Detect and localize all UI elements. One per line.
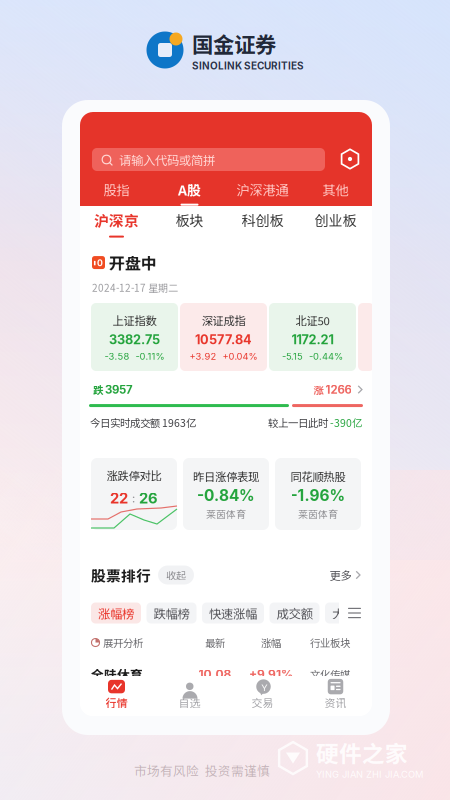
button[interactable]: 涨幅榜 [91,602,141,623]
button[interactable]: 扫一扫 [339,148,361,170]
staticText: SINOLINK SECURITIES [192,60,304,72]
button[interactable]: 昨日涨停表现 [183,458,269,530]
button[interactable]: 行情 [80,676,153,716]
staticText: 自选 [178,695,200,710]
staticText: 沪深京 [94,209,139,231]
staticText: 1172.21 [291,332,333,347]
button[interactable]: 同花顺热股 [275,458,361,530]
staticText: 行业板块 [310,635,350,650]
staticText: 文化传媒 [310,667,350,682]
button[interactable]: 北证50 [269,303,356,371]
staticText: 股指 [103,180,129,199]
staticText: : [132,491,135,505]
staticText: 市场有风险 投资需谨慎 [134,761,270,779]
button[interactable]: 更多 [329,567,361,583]
staticText: 10577.84 [195,332,252,347]
staticText: 涨 [313,382,325,397]
staticText: -1.96% [290,486,345,505]
staticText: 深证成指 [201,312,245,328]
staticText: 涨幅榜 [98,604,134,622]
staticText: 大单 [332,604,356,622]
button[interactable]: 沪深京 [80,207,153,240]
staticText: 北证50 [295,312,329,328]
staticText: 行情 [105,695,127,710]
staticText: 全陆休育 [91,665,143,683]
staticText: A股 [178,179,201,200]
staticText: 国金证券 [192,28,276,59]
staticText: -5.15 -0.44% [282,351,343,362]
button[interactable]: 自选 [153,676,226,716]
button[interactable]: 更多榜单 [347,605,362,620]
staticText: 更多 [329,567,351,583]
staticText: +3.92 +0.04% [189,351,257,362]
staticText: 较上一日此时 [268,415,330,430]
staticText: -3.58 -0.11% [104,351,164,362]
staticText: 3382.75 [109,332,160,347]
button[interactable]: 大单 [325,602,363,623]
button[interactable]: 快速涨幅 [202,602,264,623]
staticText: 1266 [325,383,351,396]
button[interactable]: 资讯 [299,676,372,716]
staticText: Y [261,682,267,694]
button[interactable]: 科创板 [226,207,299,240]
button[interactable]: 板块 [153,207,226,240]
staticText: 成交额 [276,604,312,622]
staticText: 开盘中 [109,251,157,274]
staticText: 交易 [251,695,273,710]
staticText: +9.91% [249,667,293,681]
staticText: 22 [110,489,128,507]
staticText: 板块 [175,210,203,230]
button[interactable]: 上证指数 [91,303,178,371]
staticText: 3957 [105,383,133,396]
staticText: 最新 [205,635,225,650]
staticText: 0 [97,258,103,268]
staticText: 其他 [322,180,348,199]
staticText: 莱茵体育 [206,506,246,521]
staticText: 创业板 [314,210,356,230]
staticText: 股票排行 [91,564,151,586]
staticText: 涨跌停对比 [106,467,161,483]
staticText: 展开分析 [103,635,143,650]
button[interactable]: 深证成指 [180,303,267,371]
staticText: 10.08 [198,667,231,681]
button[interactable]: Y [226,676,299,716]
button[interactable]: 跌幅榜 [146,602,196,623]
staticText: 2024-12-17 星期二 [92,280,178,295]
staticText: 请输入代码或简拼 [119,150,215,168]
staticText: 跌幅榜 [153,604,189,622]
button[interactable]: 沪深港通 [226,180,299,205]
button[interactable]: A股 [153,180,226,205]
button[interactable]: 其他 [299,180,372,205]
staticText: 莱茵体育 [298,506,338,521]
staticText: 26 [139,489,158,507]
staticText: 硬件之家 [316,736,408,769]
staticText: 昨日涨停表现 [193,468,259,484]
staticText: 跌 [93,382,105,397]
button[interactable]: 股指 [80,180,153,205]
staticText: 沪深港通 [236,180,288,199]
staticText: 资讯 [324,695,346,710]
staticText: -0.84% [197,486,255,505]
button[interactable]: 创业板 [299,207,372,240]
staticText: 上证指数 [112,312,156,328]
staticText: YING JIAN ZHI JIA.COM [316,769,423,780]
staticText: 收起 [166,568,186,582]
staticText: -390亿 [330,415,362,430]
button[interactable]: 涨跌停对比 [91,458,177,530]
button[interactable]: 成交额 [269,602,319,623]
staticText: 今日实时成交额 1963亿 [90,415,196,430]
button[interactable]: 请输入代码或简拼 [92,148,325,171]
button[interactable]: 收起 [158,565,194,584]
staticText: 同花顺热股 [290,468,345,484]
staticText: 涨幅 [261,635,281,650]
staticText: 科创板 [241,210,283,230]
staticText: 快速涨幅 [209,604,257,622]
